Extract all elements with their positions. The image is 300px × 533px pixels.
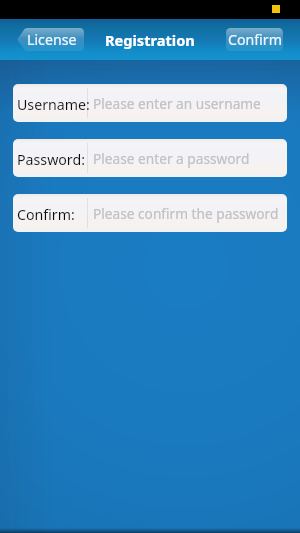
staticText: Password: — [17, 150, 93, 169]
staticText: Username: — [17, 95, 93, 114]
button[interactable]: Confirm — [226, 28, 283, 51]
staticText: Confirm: — [17, 205, 93, 224]
staticText: Please enter an username — [93, 94, 261, 113]
button[interactable]: Password: — [13, 139, 287, 177]
staticText: Please confirm the password — [93, 204, 279, 223]
staticText: License — [27, 30, 77, 49]
button[interactable]: License — [16, 28, 84, 51]
staticText: Please enter a password — [93, 149, 250, 168]
button[interactable]: Username: — [13, 84, 287, 122]
button[interactable]: Confirm: — [13, 194, 287, 232]
staticText: Registration — [105, 30, 195, 50]
staticText: Confirm — [228, 30, 282, 49]
